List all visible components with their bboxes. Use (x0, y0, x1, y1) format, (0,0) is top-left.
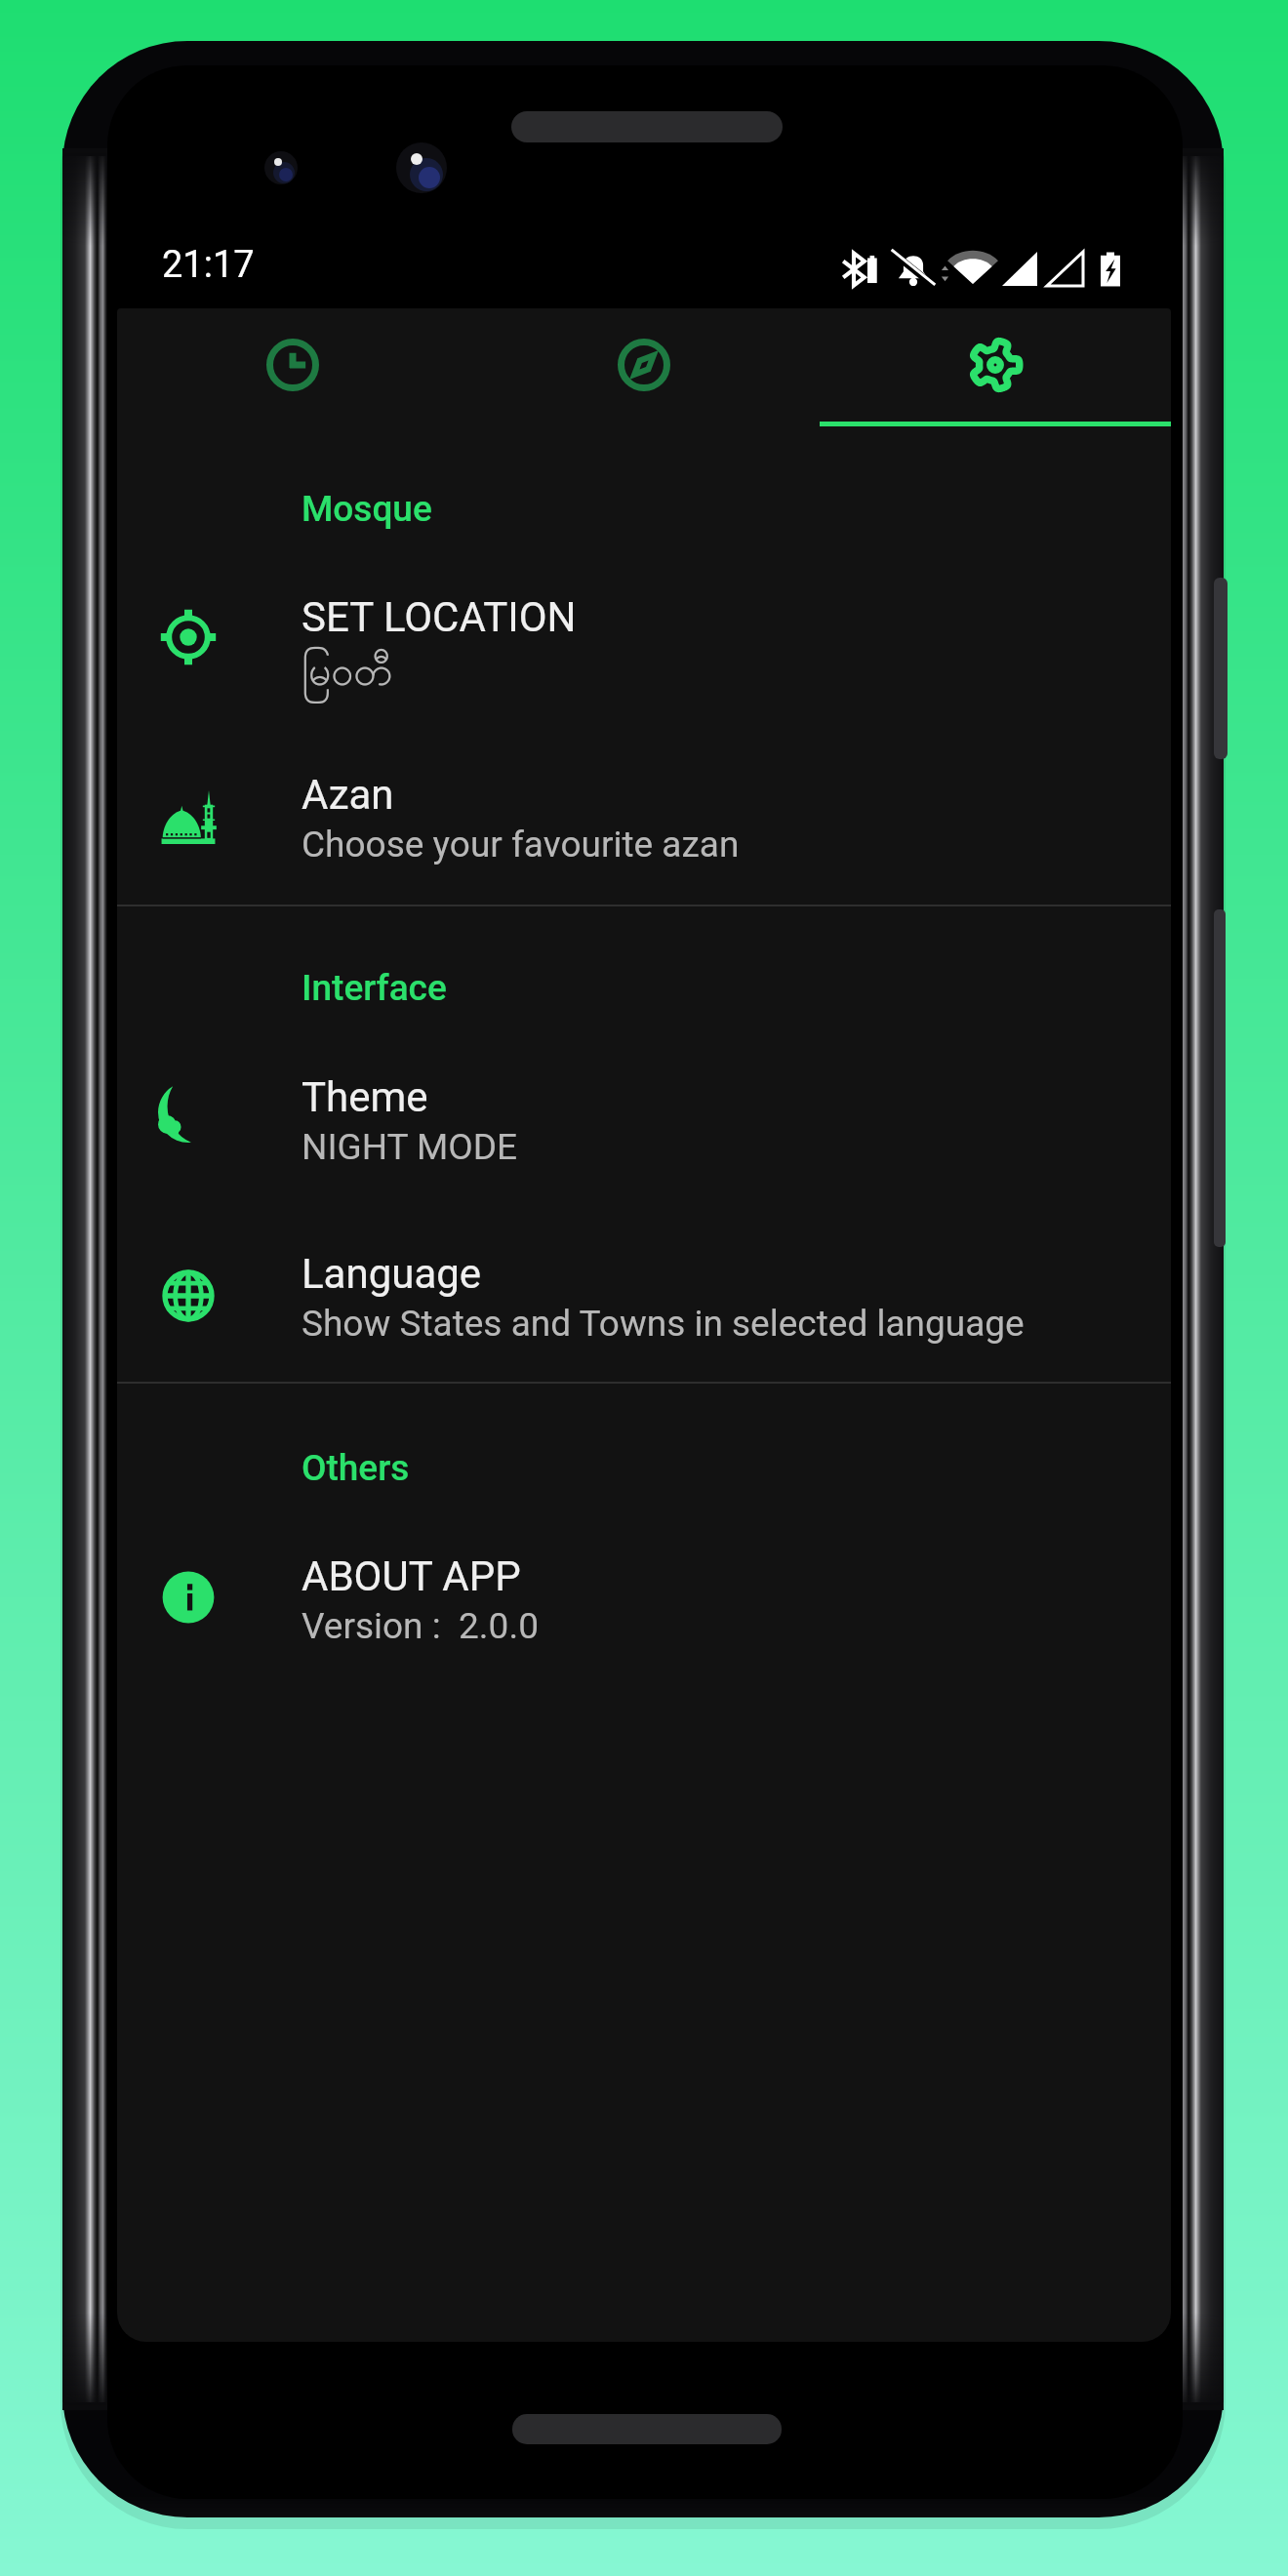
staticText: Language (302, 1250, 482, 1298)
staticText: Choose your favourite azan (302, 824, 740, 865)
staticText: NIGHT MODE (302, 1126, 518, 1168)
staticText: Theme (302, 1073, 428, 1121)
staticText: SET LOCATION (302, 593, 577, 641)
staticText: Show States and Towns in selected langua… (302, 1303, 1025, 1345)
button[interactable]: Set location (117, 561, 1171, 737)
staticText: ABOUT APP (302, 1552, 521, 1600)
staticText: Azan (302, 771, 394, 819)
button[interactable]: Qibla compass (468, 308, 820, 422)
staticText: Interface (302, 967, 447, 1009)
button[interactable]: Azan (117, 730, 1171, 906)
staticText: Mosque (302, 488, 432, 530)
button[interactable]: Prayer times (117, 308, 468, 422)
button[interactable]: Settings (820, 308, 1171, 422)
staticText: မြဝတီ (302, 646, 393, 704)
button[interactable]: About app (117, 1511, 1171, 1687)
button[interactable]: Language (117, 1209, 1171, 1385)
staticText: Others (302, 1447, 410, 1489)
staticText: 21:17 (162, 243, 255, 287)
button[interactable]: Theme (117, 1032, 1171, 1208)
staticText: Version : 2.0.0 (302, 1605, 539, 1647)
